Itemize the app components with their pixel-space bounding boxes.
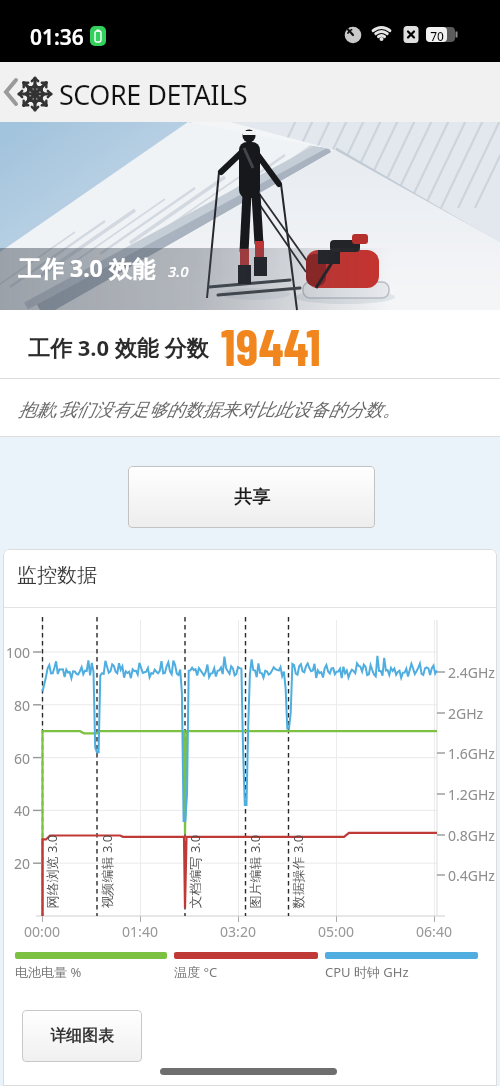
staticText: 温度 °C xyxy=(174,963,218,981)
staticText: 共享 xyxy=(234,486,270,509)
staticText: 2GHz xyxy=(448,704,484,723)
staticText: 监控数据 xyxy=(17,563,97,588)
staticText: 1.2GHz xyxy=(448,785,495,804)
button[interactable]: 共享 xyxy=(128,466,375,528)
staticText: 40 xyxy=(0,801,30,820)
button[interactable]: 详细图表 xyxy=(22,1010,142,1062)
staticText: 60 xyxy=(0,749,30,768)
staticText: 0.8GHz xyxy=(448,826,495,845)
staticText: 01:36 xyxy=(30,23,84,52)
staticText: 1.6GHz xyxy=(448,744,495,763)
staticText: 05:00 xyxy=(311,922,361,941)
staticText: 3.0 xyxy=(168,261,189,281)
staticText: SCORE DETAILS xyxy=(59,76,247,113)
staticText: 视频编辑 3.0 xyxy=(97,834,114,908)
staticText: 抱歉,我们没有足够的数据来对比此设备的分数。 xyxy=(18,397,401,422)
staticText: 06:40 xyxy=(409,922,459,941)
staticText: 网络浏览 3.0 xyxy=(42,834,59,908)
staticText: 00:00 xyxy=(17,922,67,941)
staticText: 20 xyxy=(0,854,30,873)
button[interactable] xyxy=(0,62,56,122)
staticText: CPU 时钟 GHz xyxy=(325,963,409,981)
staticText: 详细图表 xyxy=(50,1026,114,1046)
staticText: 2.4GHz xyxy=(448,663,495,682)
staticText: 01:40 xyxy=(115,922,165,941)
staticText: 19441 xyxy=(221,315,322,376)
staticText: 电池电量 % xyxy=(15,963,82,981)
staticText: 工作 3.0 效能 xyxy=(18,252,155,283)
staticText: 工作 3.0 效能 分数 xyxy=(28,332,209,362)
staticText: 文档编写 3.0 xyxy=(185,834,202,908)
staticText: 80 xyxy=(0,696,30,715)
staticText: 03:20 xyxy=(213,922,263,941)
staticText: 100 xyxy=(0,643,30,662)
staticText: 数据操作 3.0 xyxy=(288,834,305,908)
staticText: 图片编辑 3.0 xyxy=(245,834,262,908)
staticText: 70 xyxy=(427,28,447,44)
staticText: 0.4GHz xyxy=(448,866,495,885)
